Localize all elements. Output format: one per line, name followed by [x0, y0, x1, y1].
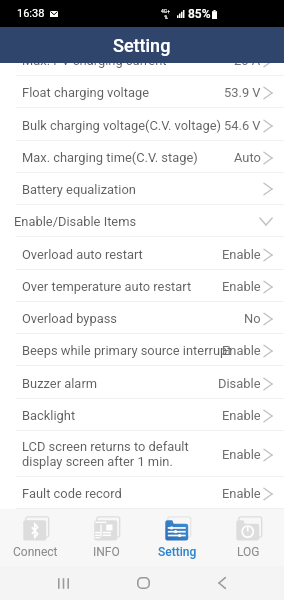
button[interactable]: Setting — [142, 509, 213, 566]
button[interactable]: Max. PV charging current — [0, 63, 284, 76]
staticText: Fault code record — [22, 486, 122, 501]
staticText: 20 A — [234, 63, 261, 68]
staticText: Setting — [113, 35, 171, 56]
staticText: Enable — [222, 279, 261, 294]
button[interactable]: INFO — [71, 509, 142, 566]
staticText: Max. PV charging current — [22, 63, 167, 68]
staticText: 53.9 V — [224, 85, 261, 100]
button[interactable]: LOG — [213, 509, 284, 566]
staticText: Overload auto restart — [22, 247, 143, 262]
button[interactable]: Float charging voltage — [0, 76, 284, 108]
staticText: Over temperature auto restart — [22, 279, 192, 294]
staticText: Connect — [13, 545, 58, 559]
button[interactable]: LCD screen returns to default display sc… — [0, 431, 284, 477]
staticText: Enable — [222, 343, 261, 358]
button[interactable]: Connect — [0, 509, 71, 566]
button[interactable]: Beeps while primary source interrupt — [0, 334, 284, 366]
button[interactable]: Backlight — [0, 399, 284, 431]
staticText: LCD screen returns to default display sc… — [22, 439, 189, 469]
staticText: Float charging voltage — [22, 85, 150, 100]
staticText: Overload bypass — [22, 311, 118, 326]
button[interactable]: Back — [195, 566, 249, 600]
button[interactable]: Overload auto restart — [0, 238, 284, 270]
staticText: Disable — [218, 376, 261, 391]
staticText: Enable/Disable Items — [14, 214, 137, 229]
staticText: Buzzer alarm — [22, 376, 98, 391]
staticText: 54.6 V — [224, 118, 261, 133]
staticText: 16:38 — [17, 7, 45, 20]
staticText: Enable — [222, 447, 261, 462]
staticText: Beeps while primary source interrupt — [22, 343, 232, 358]
button[interactable]: Recents — [36, 566, 90, 600]
staticText: 4G+ — [161, 8, 171, 14]
staticText: ⇅ — [164, 14, 169, 20]
staticText: Max. charging time(C.V. stage) — [22, 150, 198, 165]
staticText: Auto — [234, 150, 261, 165]
button[interactable]: Enable/Disable Items — [0, 205, 284, 237]
staticText: Backlight — [22, 408, 76, 423]
button[interactable]: Max. charging time(C.V. stage) — [0, 141, 284, 173]
staticText: Enable — [222, 486, 261, 501]
button[interactable]: Over temperature auto restart — [0, 270, 284, 302]
button[interactable]: Battery equalization — [0, 173, 284, 205]
button[interactable]: Fault code record — [0, 477, 284, 509]
staticText: INFO — [93, 545, 120, 559]
button[interactable]: Home — [116, 566, 170, 600]
staticText: Bulk charging voltage(C.V. voltage) — [22, 118, 221, 133]
button[interactable]: Bulk charging voltage(C.V. voltage) — [0, 109, 284, 141]
staticText: 85% — [188, 7, 211, 21]
staticText: No — [244, 311, 261, 326]
button[interactable]: Buzzer alarm — [0, 367, 284, 399]
staticText: LOG — [237, 545, 260, 559]
staticText: Enable — [222, 247, 261, 262]
staticText: Enable — [222, 408, 261, 423]
staticText: Setting — [158, 545, 197, 559]
button[interactable]: Overload bypass — [0, 302, 284, 334]
staticText: Battery equalization — [22, 182, 136, 197]
